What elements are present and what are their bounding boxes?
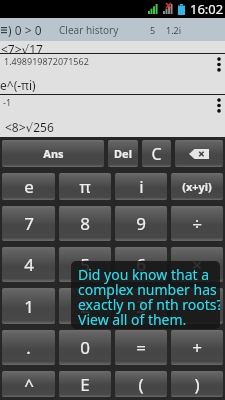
button[interactable]: Menu (0, 18, 8, 41)
staticText: × (192, 253, 202, 276)
staticText: 9 (136, 212, 146, 235)
button[interactable]: (x+yi) (171, 173, 223, 200)
button[interactable]: 0 (59, 330, 111, 365)
staticText: 0 (80, 336, 90, 359)
staticText: − (192, 295, 202, 318)
staticText: e (24, 175, 34, 198)
staticText: π (79, 175, 91, 198)
button[interactable]: × (171, 247, 223, 282)
button[interactable]: 1 (2, 288, 55, 324)
button[interactable]: 6 (115, 247, 167, 282)
button[interactable]: = (115, 330, 167, 365)
button[interactable]: Ans (2, 140, 104, 167)
staticText: -1 (3, 96, 12, 108)
button[interactable]: i (115, 173, 167, 200)
staticText: ( (138, 373, 144, 396)
staticText: Ans (43, 146, 64, 161)
staticText: i (139, 175, 144, 198)
button[interactable]: π (59, 173, 111, 200)
staticText: . (26, 336, 31, 359)
button[interactable]: 8 (59, 206, 111, 241)
button[interactable]: More options (213, 54, 225, 75)
staticText: C (151, 143, 162, 165)
button[interactable]: Clear history (59, 23, 119, 37)
staticText: <7>√17 (1, 41, 43, 53)
staticText: ) 0 > 0 (8, 22, 42, 38)
staticText: ) (194, 373, 200, 396)
staticText: 16:02 (190, 0, 224, 18)
staticText: Did you know that a complex number has e… (78, 265, 220, 329)
staticText: 3 (136, 295, 146, 318)
button[interactable]: C (142, 140, 171, 167)
button[interactable]: ^ (2, 371, 55, 397)
button[interactable]: ( (115, 371, 167, 397)
staticText: ^ (24, 373, 34, 396)
staticText: E (80, 373, 90, 396)
staticText: 7 (24, 212, 34, 235)
staticText: Del (114, 146, 132, 161)
button[interactable]: Del (108, 140, 138, 167)
button[interactable]: + (171, 330, 223, 365)
staticText: 5 (80, 253, 90, 276)
button[interactable]: − (171, 288, 223, 324)
staticText: + (192, 336, 202, 359)
staticText: 1 (24, 295, 34, 318)
staticText: (x+yi) (182, 179, 212, 194)
staticText: 1.498919872071562 (4, 55, 89, 67)
staticText: ÷ (192, 212, 202, 235)
button[interactable]: 4 (2, 247, 55, 282)
staticText: 4 (24, 253, 34, 276)
staticText: = (136, 336, 146, 359)
staticText: Clear history (59, 23, 119, 37)
staticText: 1.2i (166, 24, 182, 36)
staticText: e^(-πi) (0, 77, 36, 93)
button[interactable]: e (2, 173, 55, 200)
button[interactable]: 2 (59, 288, 111, 324)
button[interactable]: . (2, 330, 55, 365)
staticText: 2 (80, 295, 90, 318)
button[interactable]: 9 (115, 206, 167, 241)
button[interactable]: Backspace (175, 140, 223, 167)
button[interactable]: More options (213, 95, 225, 116)
staticText: 8 (80, 212, 90, 235)
button[interactable]: ) (171, 371, 223, 397)
button[interactable]: 5 (59, 247, 111, 282)
button[interactable]: ÷ (171, 206, 223, 241)
staticText: 5 (150, 24, 156, 36)
button[interactable]: 3 (115, 288, 167, 324)
button[interactable]: E (59, 371, 111, 397)
staticText: 6 (136, 253, 146, 276)
staticText: <8>√256 (5, 119, 54, 135)
button[interactable]: 7 (2, 206, 55, 241)
